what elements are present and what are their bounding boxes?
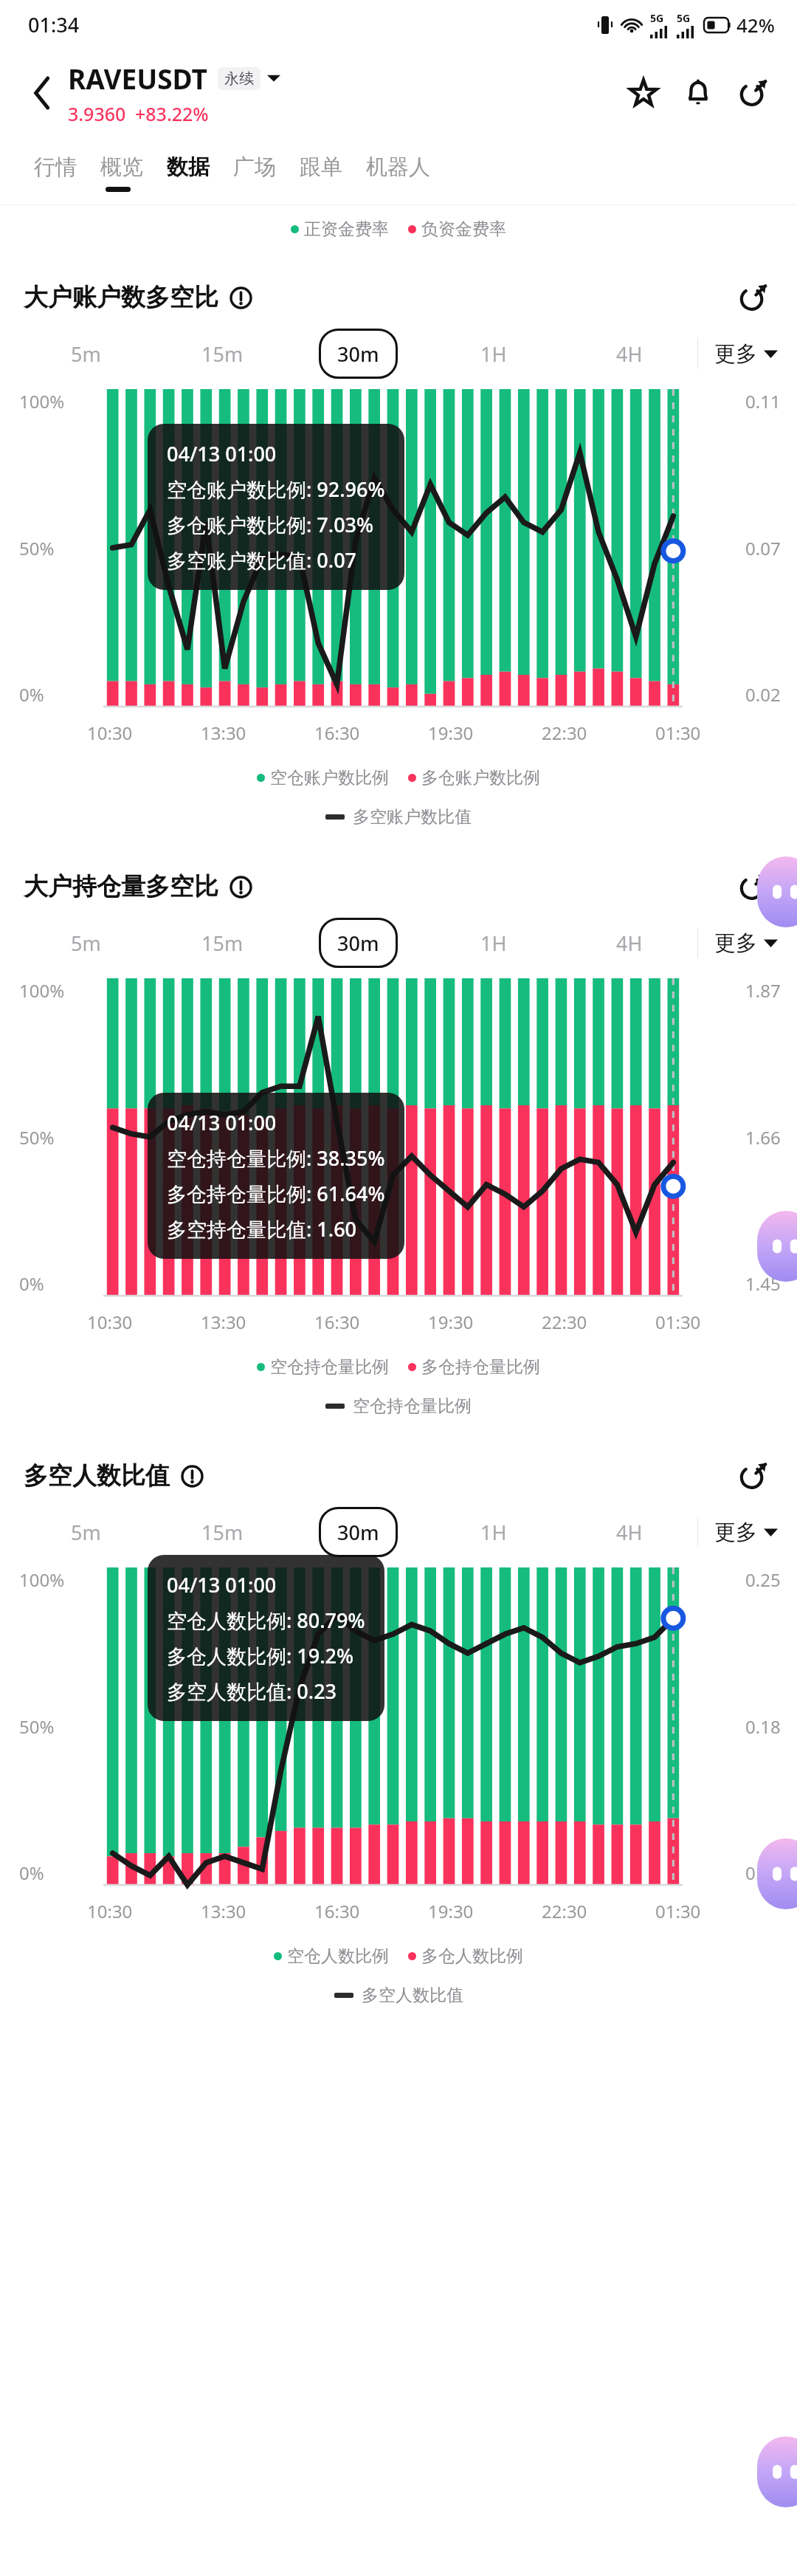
button[interactable]: 4H [616,918,643,968]
button[interactable]: Share chart [732,277,773,318]
button[interactable]: Assistant [757,856,797,927]
staticText: 100% [19,389,65,413]
button[interactable]: Share [731,71,775,115]
staticText: 0.10 [745,1861,781,1885]
staticText: 30m [337,930,379,957]
staticText: 1H [480,1519,507,1546]
staticText: 04/13 01:00 [167,1571,277,1598]
button[interactable]: 30m [319,1507,398,1557]
staticText: 数据 [167,154,210,181]
staticText: 更多 [714,930,757,957]
button[interactable]: 4H [616,329,643,379]
button[interactable]: Contract type [267,74,280,83]
staticText: 22:30 [542,1310,587,1334]
staticText: 大户账户数多空比 [24,282,218,313]
button[interactable]: 数据 [155,148,221,187]
staticText: 广场 [233,154,276,181]
staticText: 跟单 [300,154,342,181]
staticText: 10:30 [87,1899,133,1923]
staticText: 16:30 [314,1310,360,1334]
staticText: 13:30 [201,1310,246,1334]
staticText: 5G [650,11,664,25]
button[interactable]: 1H [480,1507,507,1557]
staticText: 多空人数比值: 0.23 [167,1677,337,1705]
button[interactable]: Favourite [621,71,666,115]
staticText: 1H [480,930,507,957]
button[interactable]: 跟单 [288,148,354,187]
staticText: 空仓持仓量比例 [270,1356,389,1378]
staticText: 15m [201,1519,244,1546]
button[interactable]: Alerts [676,71,720,115]
staticText: 0% [19,1861,44,1885]
staticText: 多空持仓量比值: 1.60 [167,1215,357,1243]
staticText: 正资金费率 [304,219,389,240]
staticText: 5m [71,340,101,368]
button[interactable]: 1H [480,918,507,968]
button[interactable]: Info [228,874,253,899]
button[interactable]: 30m [319,329,398,379]
button[interactable]: 5m [71,918,101,968]
button[interactable]: 更多 [714,930,778,957]
button[interactable]: 更多 [714,1519,778,1546]
staticText: 行情 [34,154,77,181]
button[interactable]: 30m [319,918,398,968]
staticText: 0.25 [745,1567,781,1592]
staticText: 5m [71,930,101,957]
staticText: 04/13 01:00 [167,1109,277,1136]
staticText: 5m [71,1519,101,1546]
staticText: RAVEUSDT [68,60,207,97]
button[interactable]: 行情 [22,148,89,187]
staticText: 更多 [714,340,757,368]
staticText: 13:30 [201,1899,246,1923]
button[interactable]: 15m [201,329,244,379]
staticText: 15m [201,340,244,368]
staticText: 多仓账户数比例: 7.03% [167,511,374,538]
staticText: 4H [616,340,643,368]
staticText: 0.02 [745,682,781,707]
button[interactable]: Share chart [732,866,773,907]
button[interactable]: 永续 [224,69,254,88]
staticText: 1.87 [745,978,781,1003]
button[interactable]: 1H [480,329,507,379]
button[interactable]: Share chart [732,1455,773,1497]
button[interactable]: Info [228,285,253,310]
button[interactable]: Assistant [757,1211,797,1282]
button[interactable]: Back [22,73,62,113]
staticText: 01:34 [28,11,80,38]
staticText: 多仓人数比例 [421,1945,523,1967]
staticText: 1H [480,340,507,368]
staticText: 19:30 [428,1310,474,1334]
staticText: 100% [19,978,65,1003]
staticText: 10:30 [87,1310,133,1334]
button[interactable]: 5m [71,1507,101,1557]
staticText: 多仓持仓量比例: 61.64% [167,1180,385,1207]
button[interactable]: 4H [616,1507,643,1557]
staticText: 0.18 [745,1714,781,1739]
button[interactable]: 机器人 [354,148,442,187]
staticText: 负资金费率 [421,219,506,240]
staticText: 多空账户数比值: 0.07 [167,546,357,574]
staticText: 0.07 [745,536,781,560]
button[interactable]: Info [179,1463,204,1488]
staticText: +83.22% [135,101,209,126]
staticText: 50% [19,1125,55,1150]
staticText: 空仓持仓量比例: 38.35% [167,1144,385,1172]
button[interactable]: Assistant [757,2436,797,2507]
button[interactable]: 广场 [221,148,288,187]
button[interactable]: 15m [201,918,244,968]
staticText: 0% [19,682,44,707]
staticText: 空仓账户数比例 [270,767,389,789]
staticText: 1.45 [745,1271,781,1296]
staticText: 5G [677,11,691,25]
button[interactable]: 更多 [714,340,778,368]
staticText: 30m [337,1519,379,1546]
button[interactable]: Assistant [757,1838,797,1909]
button[interactable]: 概览 [89,148,155,187]
staticText: 30m [337,340,379,368]
staticText: 空仓人数比例 [287,1945,389,1967]
button[interactable]: 5m [71,329,101,379]
staticText: 50% [19,1714,55,1739]
button[interactable]: 15m [201,1507,244,1557]
staticText: 0% [19,1271,44,1296]
staticText: 04/13 01:00 [167,440,277,467]
